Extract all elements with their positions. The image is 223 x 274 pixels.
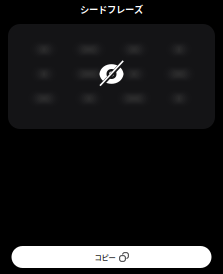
staticText: シードフレーズ xyxy=(80,2,143,16)
button[interactable]: コピー xyxy=(11,246,211,268)
staticText: コピー xyxy=(94,252,115,262)
